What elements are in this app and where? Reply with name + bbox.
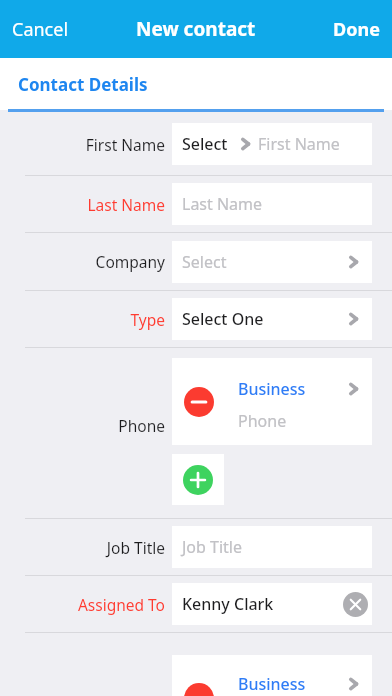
staticText: Last Name	[182, 193, 263, 215]
staticText: Select One	[182, 308, 264, 330]
button[interactable]: Contact Details	[0, 65, 166, 104]
staticText: Cancel	[12, 17, 69, 42]
staticText: Select	[182, 133, 228, 155]
button[interactable]: Assigned To	[0, 576, 392, 632]
button[interactable]: Job Title	[0, 519, 392, 575]
staticText: Type	[45, 309, 165, 330]
button[interactable]: Remove entry	[172, 655, 372, 696]
staticText: Company	[45, 251, 165, 272]
button[interactable]: Remove phone	[172, 358, 372, 445]
button[interactable]: Last Name	[0, 176, 392, 232]
other: Remove entry	[184, 683, 214, 696]
staticText: Job Title	[45, 537, 165, 558]
button[interactable]: First Name	[0, 113, 392, 175]
staticText: Assigned To	[35, 594, 165, 615]
staticText: First Name	[258, 133, 340, 155]
staticText: Business	[238, 378, 306, 400]
button[interactable]: Type	[0, 291, 392, 347]
other: Remove phone	[184, 387, 214, 417]
staticText: Phone	[45, 415, 165, 436]
staticText: First Name	[45, 134, 165, 155]
staticText: Kenny Clark	[182, 593, 274, 615]
staticText: Phone	[238, 410, 287, 432]
staticText: Business	[238, 673, 306, 695]
staticText: Last Name	[45, 194, 165, 215]
staticText: Contact Details	[18, 73, 148, 96]
button[interactable]: Add phone	[172, 454, 224, 505]
staticText: Job Title	[182, 536, 243, 558]
staticText: New contact	[136, 16, 256, 42]
button[interactable]: Done	[321, 9, 392, 50]
button[interactable]: Clear assigned to	[343, 592, 368, 617]
staticText: Done	[333, 17, 380, 42]
button[interactable]: Cancel	[0, 9, 81, 50]
staticText: Select	[182, 251, 227, 273]
button[interactable]: Company	[0, 233, 392, 290]
